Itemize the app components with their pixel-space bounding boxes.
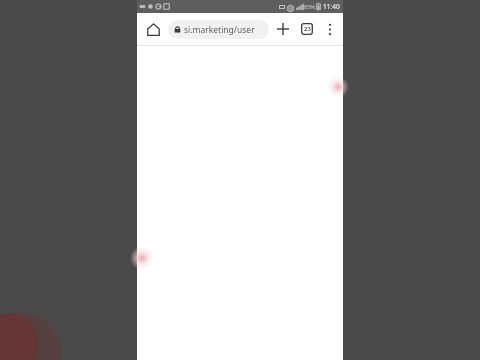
- button[interactable]: New tab: [271, 17, 295, 41]
- button[interactable]: More options: [319, 18, 341, 40]
- staticText: 85%: [304, 3, 315, 10]
- staticText: si.marketing/user: [184, 24, 255, 36]
- button[interactable]: si.marketing/user: [168, 20, 269, 39]
- staticText: 11:40: [323, 2, 340, 11]
- button[interactable]: Switch tabs: [295, 17, 319, 41]
- staticText: 23: [304, 25, 311, 33]
- button[interactable]: Home: [141, 17, 165, 41]
